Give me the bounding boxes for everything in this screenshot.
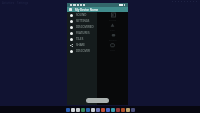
button[interactable]: SOUND xyxy=(67,12,97,18)
staticText: SETTINGS xyxy=(76,19,90,23)
button[interactable]: Docs xyxy=(75,107,80,112)
staticText: Activities Settings xyxy=(2,1,29,5)
button[interactable]: FEATURES xyxy=(67,30,97,36)
button[interactable]: Cast xyxy=(110,22,115,32)
button[interactable]: Browser xyxy=(65,107,70,112)
button[interactable]: Screen xyxy=(109,12,117,22)
button[interactable]: Code xyxy=(120,107,125,112)
staticText: Record xyxy=(109,39,117,42)
button[interactable]: Record xyxy=(109,32,117,42)
staticText: Screen xyxy=(109,19,117,22)
staticText: FEATURES xyxy=(76,31,90,35)
button[interactable]: Activities Settings xyxy=(2,1,29,5)
staticText: Cast xyxy=(110,29,115,32)
button[interactable]: Settings xyxy=(130,107,135,112)
staticText: Tiles xyxy=(110,49,115,52)
staticText: SHARE xyxy=(76,43,85,47)
button[interactable]: Mail xyxy=(80,107,85,112)
button[interactable]: Chat xyxy=(105,107,110,112)
staticText: SOUND xyxy=(76,13,87,17)
button[interactable]: Tiles xyxy=(110,42,115,52)
button[interactable]: SHARE xyxy=(67,42,97,48)
button[interactable]: Files xyxy=(70,107,75,112)
staticText: TILES xyxy=(76,37,84,41)
button[interactable]: DISCOVERED xyxy=(67,24,97,30)
button[interactable]: TILES xyxy=(67,36,97,42)
button[interactable]: Notes xyxy=(90,107,95,112)
button[interactable]: Terminal xyxy=(125,107,130,112)
button[interactable]: Music xyxy=(95,107,100,112)
button[interactable]: Photos xyxy=(100,107,105,112)
button[interactable]: Menu xyxy=(69,8,72,11)
staticText: DISCOVER xyxy=(76,49,90,53)
button[interactable]: SETTINGS xyxy=(67,18,97,24)
staticText: My Device Name xyxy=(75,8,99,12)
button[interactable] xyxy=(86,98,109,103)
button[interactable]: Store xyxy=(85,107,90,112)
button[interactable]: Cloud xyxy=(110,107,115,112)
button[interactable]: DISCOVER xyxy=(67,48,97,54)
staticText: DISCOVERED xyxy=(76,25,94,29)
button[interactable]: Video xyxy=(115,107,120,112)
